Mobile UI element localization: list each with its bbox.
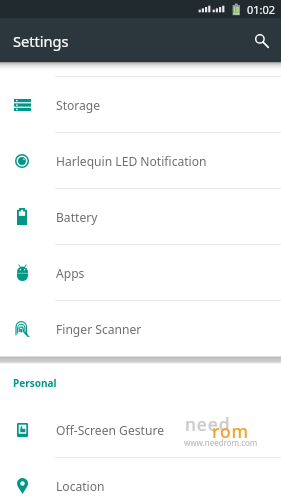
button[interactable]: Harlequin LED Notification: [0, 133, 281, 188]
button[interactable]: Location: [0, 458, 281, 500]
staticText: Personal: [13, 376, 57, 390]
staticText: www.needrom.com: [184, 437, 258, 448]
staticText: Off-Screen Gesture: [56, 422, 164, 438]
staticText: rom: [212, 419, 250, 443]
button[interactable]: Finger Scanner: [0, 301, 281, 356]
button[interactable]: Apps: [0, 245, 281, 300]
button[interactable]: Storage: [0, 77, 281, 132]
button[interactable]: Battery: [0, 189, 281, 244]
button[interactable]: Off-Screen Gesture: [0, 402, 281, 457]
button[interactable]: Search: [242, 21, 281, 61]
staticText: Battery: [56, 209, 98, 225]
staticText: Location: [56, 478, 105, 494]
staticText: Storage: [56, 97, 101, 113]
staticText: Apps: [56, 265, 85, 281]
staticText: need: [185, 412, 231, 436]
staticText: 01:02: [247, 2, 276, 17]
staticText: Finger Scanner: [56, 321, 142, 337]
staticText: Harlequin LED Notification: [56, 153, 207, 169]
staticText: Settings: [13, 31, 69, 51]
